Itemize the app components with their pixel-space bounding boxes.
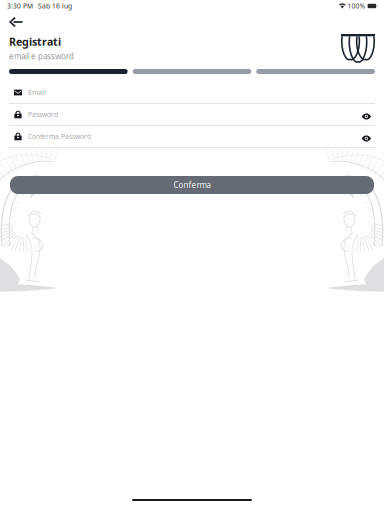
button[interactable]: Show Password (354, 106, 384, 123)
staticText: Conferma Password (28, 132, 91, 141)
staticText: Conferma (173, 180, 210, 190)
staticText: 3:30 PM (7, 2, 33, 10)
staticText: Sab 16 lug (38, 2, 72, 10)
staticText: Email (28, 88, 46, 97)
button[interactable]: Show Conferma Password (354, 128, 384, 145)
staticText: Registrati (9, 35, 61, 49)
button[interactable]: Conferma (10, 176, 374, 194)
staticText: 100% (348, 2, 366, 10)
button[interactable]: Back (0, 12, 31, 32)
staticText: email e password (9, 51, 74, 61)
staticText: Password (28, 110, 58, 119)
